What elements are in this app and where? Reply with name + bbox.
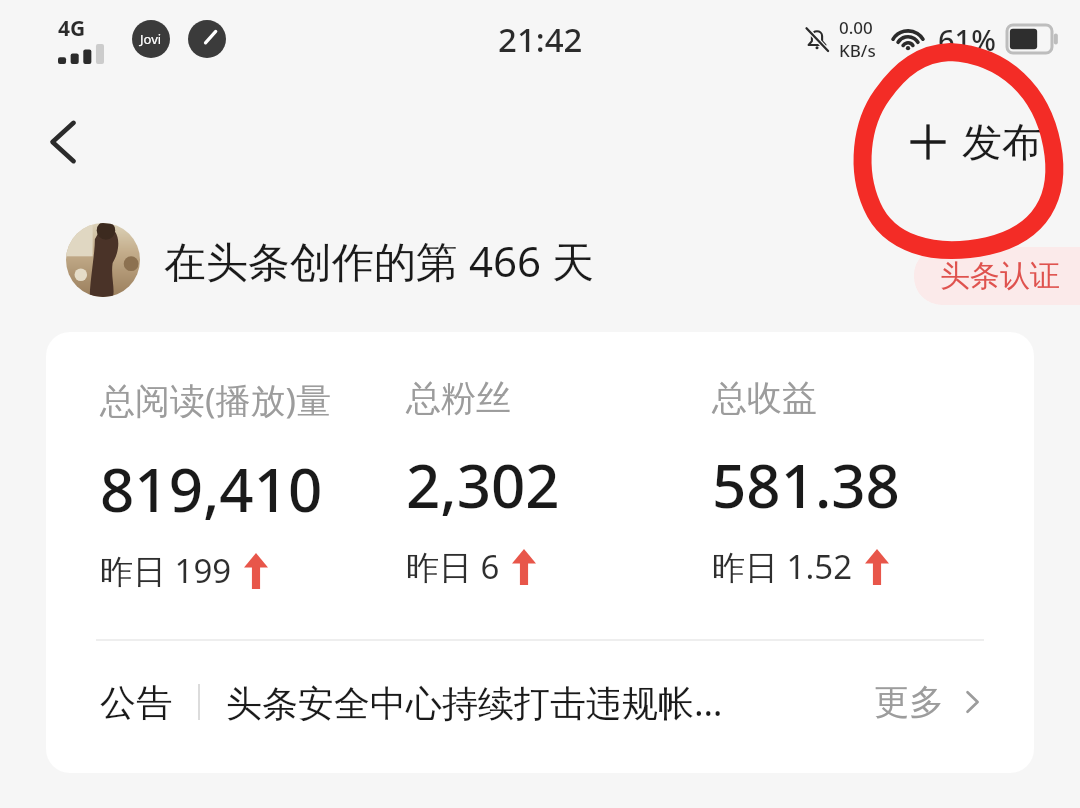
staticText: 4G [58,14,86,43]
staticText: 发布 [962,117,1042,167]
button[interactable]: 发布 [898,111,1050,173]
staticText: 昨日 1.52 [712,544,853,589]
staticText: 头条安全中心持续打击违规帐… [226,678,723,727]
staticText: 581.38 [712,444,900,526]
staticText: 更多 [874,680,944,724]
button[interactable]: 总收益 [712,376,1018,589]
button[interactable]: 头条认证 [914,247,1080,305]
staticText: 公告 [100,680,172,725]
staticText: 总收益 [712,376,817,420]
staticText: 头条认证 [940,257,1060,295]
staticText: 2,302 [406,444,560,526]
staticText: 总粉丝 [406,376,511,420]
button[interactable]: Back [18,96,110,188]
button[interactable]: 在头条创作的第 466 天 [66,223,594,297]
staticText: 0.00 [839,16,873,39]
staticText: 总阅读(播放)量 [100,376,332,424]
button[interactable]: 总阅读(播放)量 [100,376,406,593]
staticText: 819,410 [100,448,323,530]
button[interactable]: 公告 [46,641,1034,763]
staticText: 昨日 6 [406,544,500,589]
staticText: 21:42 [498,17,583,62]
staticText: 昨日 199 [100,548,232,593]
staticText: KB/s [839,39,876,62]
staticText: 在头条创作的第 466 天 [164,232,594,289]
staticText: 61% [938,20,996,59]
button[interactable]: 总粉丝 [406,376,712,589]
staticText: Jovi [140,30,162,48]
